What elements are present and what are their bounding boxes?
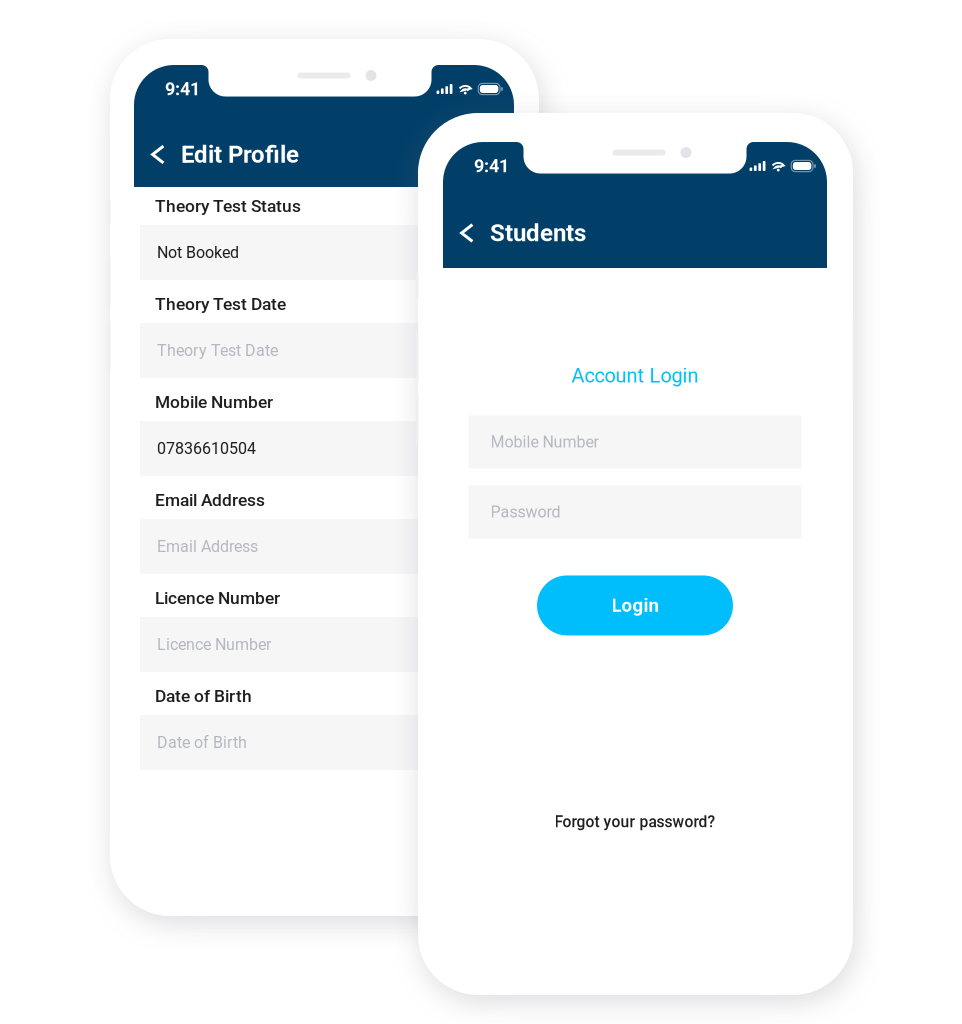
- staticText: Password: [490, 503, 560, 521]
- button[interactable]: Date of Birth: [140, 715, 508, 770]
- button[interactable]: Not Booked: [140, 225, 508, 280]
- button[interactable]: 07836610504: [140, 421, 508, 476]
- staticText: Email Address: [155, 490, 265, 510]
- staticText: Mobile Number: [490, 433, 598, 451]
- staticText: Email Address: [157, 537, 258, 556]
- staticText: Mobile Number: [155, 392, 273, 412]
- staticText: Licence Number: [155, 588, 280, 608]
- button[interactable]: Theory Test Date: [140, 323, 508, 378]
- button[interactable]: Back: [142, 122, 174, 187]
- button[interactable]: Email Address: [140, 519, 508, 574]
- button[interactable]: Password: [468, 485, 801, 538]
- staticText: Licence Number: [157, 635, 271, 654]
- staticText: Theory Test Date: [155, 294, 286, 314]
- staticText: Students: [490, 219, 586, 247]
- staticText: Forgot your password?: [554, 813, 715, 831]
- staticText: Date of Birth: [157, 733, 247, 752]
- button[interactable]: Forgot your password?: [443, 805, 827, 839]
- staticText: Not Booked: [157, 243, 239, 262]
- button[interactable]: Mobile Number: [468, 415, 801, 468]
- staticText: Date of Birth: [155, 686, 252, 706]
- button[interactable]: Back: [451, 199, 483, 267]
- staticText: Edit Profile: [181, 140, 299, 168]
- staticText: Theory Test Status: [155, 196, 301, 216]
- staticText: Account Login: [571, 364, 698, 387]
- staticText: 9:41: [165, 78, 200, 100]
- staticText: Login: [611, 594, 658, 616]
- button[interactable]: Licence Number: [140, 617, 508, 672]
- staticText: 9:41: [474, 155, 509, 177]
- button[interactable]: Login: [537, 575, 733, 635]
- staticText: 07836610504: [157, 439, 256, 458]
- staticText: Theory Test Date: [157, 341, 278, 360]
